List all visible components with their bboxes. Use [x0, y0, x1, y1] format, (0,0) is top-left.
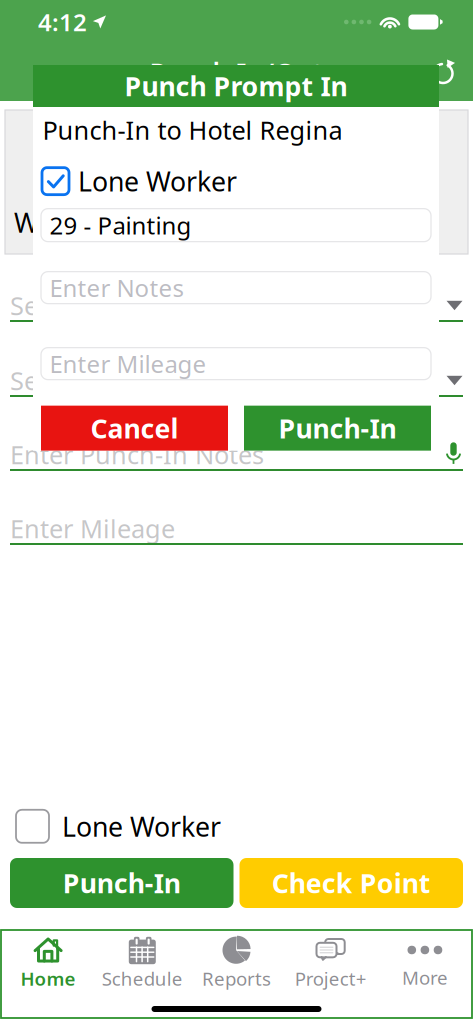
staticText: Enter Mileage — [10, 512, 175, 545]
staticText: Punch-In to Hotel Regina — [42, 113, 342, 147]
staticText: Punch-In — [278, 410, 396, 446]
button[interactable]: Schedule — [95, 930, 189, 991]
staticText: Enter Notes — [49, 272, 183, 304]
button[interactable]: Home — [1, 930, 95, 991]
staticText: Punch Prompt In — [124, 68, 347, 104]
staticText: Cancel — [90, 410, 178, 446]
button[interactable]: Project+ — [284, 930, 378, 991]
staticText: Enter Punch-In Notes — [10, 438, 264, 471]
staticText: Punch In/Out — [149, 55, 323, 90]
staticText: Reports — [202, 966, 271, 991]
staticText: 29 - Painting — [49, 209, 191, 241]
button[interactable]: Lone Worker — [33, 168, 439, 195]
button[interactable]: More — [378, 931, 472, 990]
button[interactable]: Reports — [189, 930, 284, 991]
staticText: 4:12 — [38, 6, 87, 38]
staticText: More — [402, 965, 448, 990]
staticText: Home — [21, 966, 76, 991]
staticText: Enter Mileage — [49, 348, 206, 380]
staticText: Schedule — [102, 966, 183, 991]
staticText: Week Total: 00:00 — [14, 205, 231, 240]
button[interactable]: Cancel — [41, 406, 228, 451]
button[interactable]: Punch-In — [10, 858, 233, 908]
staticText: Duration: 00:00 — [141, 165, 331, 201]
button[interactable]: Select Project — [0, 291, 473, 322]
staticText: Check Point — [272, 865, 431, 901]
staticText: Project+ — [295, 966, 367, 991]
staticText: Lone Worker — [78, 163, 237, 199]
button[interactable]: Check Point — [239, 858, 463, 908]
staticText: Select Cost Code — [10, 364, 207, 397]
button[interactable]: Select Cost Code — [0, 366, 473, 397]
button[interactable]: Refresh — [429, 58, 473, 86]
staticText: Punch-In — [63, 865, 181, 901]
button[interactable]: Punch-In — [244, 406, 431, 451]
staticText: Lone Worker — [62, 809, 221, 844]
staticText: Select Project — [10, 289, 169, 322]
